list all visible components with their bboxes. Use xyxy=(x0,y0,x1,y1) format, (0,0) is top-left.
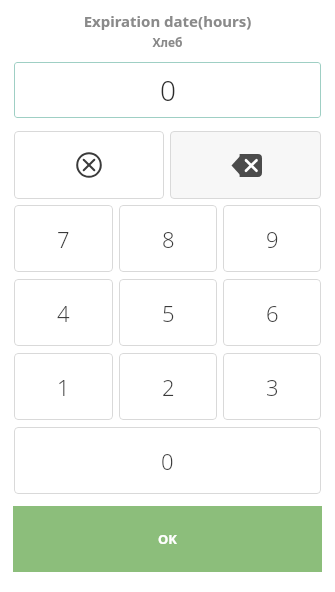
staticText: 6 xyxy=(266,298,279,328)
button[interactable]: 5 xyxy=(119,279,217,346)
button[interactable]: 0 xyxy=(14,62,321,118)
staticText: 4 xyxy=(57,298,70,328)
button[interactable]: Backspace xyxy=(170,131,321,199)
button[interactable]: 9 xyxy=(223,205,321,272)
button[interactable]: 1 xyxy=(14,353,113,420)
button[interactable]: 6 xyxy=(223,279,321,346)
staticText: 8 xyxy=(162,224,175,254)
staticText: 5 xyxy=(162,298,175,328)
button[interactable]: 7 xyxy=(14,205,113,272)
button[interactable]: 3 xyxy=(223,353,321,420)
staticText: 9 xyxy=(266,224,279,254)
staticText: 1 xyxy=(57,372,70,402)
staticText: 3 xyxy=(266,372,279,402)
button[interactable]: 0 xyxy=(14,427,321,494)
staticText: 7 xyxy=(57,224,70,254)
button[interactable]: 8 xyxy=(119,205,217,272)
staticText: OK xyxy=(158,530,177,548)
staticText: Хлеб xyxy=(0,34,335,50)
staticText: 2 xyxy=(162,372,175,402)
staticText: Expiration date(hours) xyxy=(0,11,335,31)
button[interactable]: Clear xyxy=(14,131,164,199)
button[interactable]: OK xyxy=(13,506,322,572)
staticText: 0 xyxy=(160,71,176,109)
staticText: 0 xyxy=(161,446,174,476)
button[interactable]: 2 xyxy=(119,353,217,420)
button[interactable]: 4 xyxy=(14,279,113,346)
